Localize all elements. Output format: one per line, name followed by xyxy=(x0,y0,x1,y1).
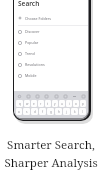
staticText: u xyxy=(61,102,63,106)
button[interactable]: Resolutions xyxy=(14,59,88,70)
button[interactable]: y xyxy=(52,100,58,107)
button[interactable]: g xyxy=(47,108,54,115)
staticText: Discover xyxy=(25,29,40,34)
button[interactable]: Discover xyxy=(14,26,88,37)
staticText: t xyxy=(47,102,49,106)
button[interactable]: l xyxy=(79,108,86,115)
button[interactable]: s xyxy=(23,108,30,115)
button[interactable]: Keyboard tool 6 xyxy=(72,94,76,98)
staticText: i xyxy=(69,102,70,106)
staticText: h xyxy=(58,110,60,114)
staticText: w xyxy=(26,102,29,106)
staticText: l xyxy=(82,110,83,114)
button[interactable]: q xyxy=(16,100,23,107)
button[interactable]: Trend xyxy=(14,48,88,59)
button[interactable]: Mobile xyxy=(14,70,88,81)
staticText: g xyxy=(50,110,52,114)
button[interactable]: k xyxy=(71,108,78,115)
button[interactable]: Keyboard tool 3 xyxy=(44,94,48,98)
button[interactable]: u xyxy=(59,100,65,107)
staticText: r xyxy=(40,102,42,106)
button[interactable]: Keyboard tool 0 xyxy=(17,94,21,98)
button[interactable]: w xyxy=(24,100,30,107)
button[interactable]: e xyxy=(31,100,37,107)
staticText: y xyxy=(54,102,56,106)
staticText: Smarter Search, xyxy=(7,137,95,153)
button[interactable]: j xyxy=(63,108,70,115)
staticText: Mobile xyxy=(25,73,37,78)
staticText: Sharper Analysis xyxy=(4,155,98,171)
button[interactable]: d xyxy=(31,108,38,115)
button[interactable]: p xyxy=(80,100,86,107)
button[interactable]: h xyxy=(55,108,62,115)
staticText: s xyxy=(26,110,28,114)
button[interactable]: Popular xyxy=(14,37,88,48)
staticText: a xyxy=(18,110,20,114)
button[interactable]: Keyboard tool 5 xyxy=(63,94,67,98)
button[interactable]: Choose Folders xyxy=(14,13,88,23)
button[interactable]: o xyxy=(73,100,79,107)
staticText: d xyxy=(34,110,36,114)
button[interactable]: r xyxy=(38,100,44,107)
staticText: o xyxy=(75,102,77,106)
staticText: Trend xyxy=(25,51,35,56)
button[interactable]: f xyxy=(39,108,46,115)
button[interactable]: t xyxy=(45,100,51,107)
button[interactable]: Keyboard tool 4 xyxy=(54,94,58,98)
button[interactable]: Keyboard tool 7 xyxy=(81,94,85,98)
staticText: p xyxy=(82,102,84,106)
staticText: Popular xyxy=(25,40,39,45)
staticText: q xyxy=(19,102,21,106)
staticText: k xyxy=(74,110,76,114)
button[interactable]: i xyxy=(66,100,72,107)
staticText: f xyxy=(42,110,44,114)
button[interactable]: a xyxy=(16,108,22,115)
staticText: j xyxy=(66,110,67,114)
staticText: Resolutions xyxy=(25,62,45,67)
staticText: e xyxy=(33,102,35,106)
button[interactable]: Keyboard tool 1 xyxy=(26,94,30,98)
staticText: Choose Folders xyxy=(25,16,51,21)
button[interactable]: Keyboard tool 2 xyxy=(35,94,39,98)
staticText: Search xyxy=(18,0,40,8)
